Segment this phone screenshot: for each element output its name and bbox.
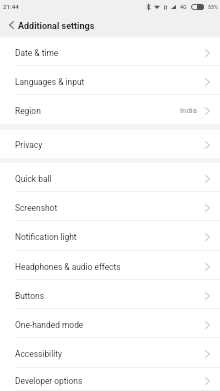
staticText: 21:44	[3, 3, 19, 10]
staticText: Developer options	[15, 376, 83, 386]
button[interactable]: Date & time	[0, 37, 220, 66]
staticText: Screenshot	[15, 203, 58, 213]
button[interactable]: Buttons	[0, 280, 220, 309]
button[interactable]: One-handed mode	[0, 309, 220, 338]
staticText: Accessibility	[15, 349, 62, 359]
staticText: One-handed mode	[15, 320, 84, 330]
button[interactable]: Region	[0, 95, 220, 124]
staticText: Date & time	[15, 48, 59, 58]
staticText: Buttons	[15, 291, 45, 301]
staticText: 4G	[180, 4, 187, 10]
button[interactable]: Headphones & audio effects	[0, 251, 220, 280]
button[interactable]: Developer options	[0, 368, 220, 391]
button[interactable]: Back	[4, 17, 20, 33]
staticText: Quick ball	[15, 174, 52, 184]
staticText: Privacy	[15, 140, 43, 150]
button[interactable]: Notification light	[0, 221, 220, 251]
staticText: Additional settings	[18, 21, 95, 32]
staticText: Region	[15, 106, 41, 116]
button[interactable]: Privacy	[0, 130, 220, 158]
button[interactable]: Accessibility	[0, 338, 220, 368]
staticText: Headphones & audio effects	[15, 262, 121, 272]
staticText: Languages & input	[15, 77, 85, 87]
staticText: Notification light	[15, 232, 77, 242]
button[interactable]: Languages & input	[0, 66, 220, 95]
staticText: India	[180, 106, 197, 115]
button[interactable]: Screenshot	[0, 192, 220, 221]
button[interactable]: Quick ball	[0, 163, 220, 192]
staticText: 53%	[208, 4, 218, 10]
